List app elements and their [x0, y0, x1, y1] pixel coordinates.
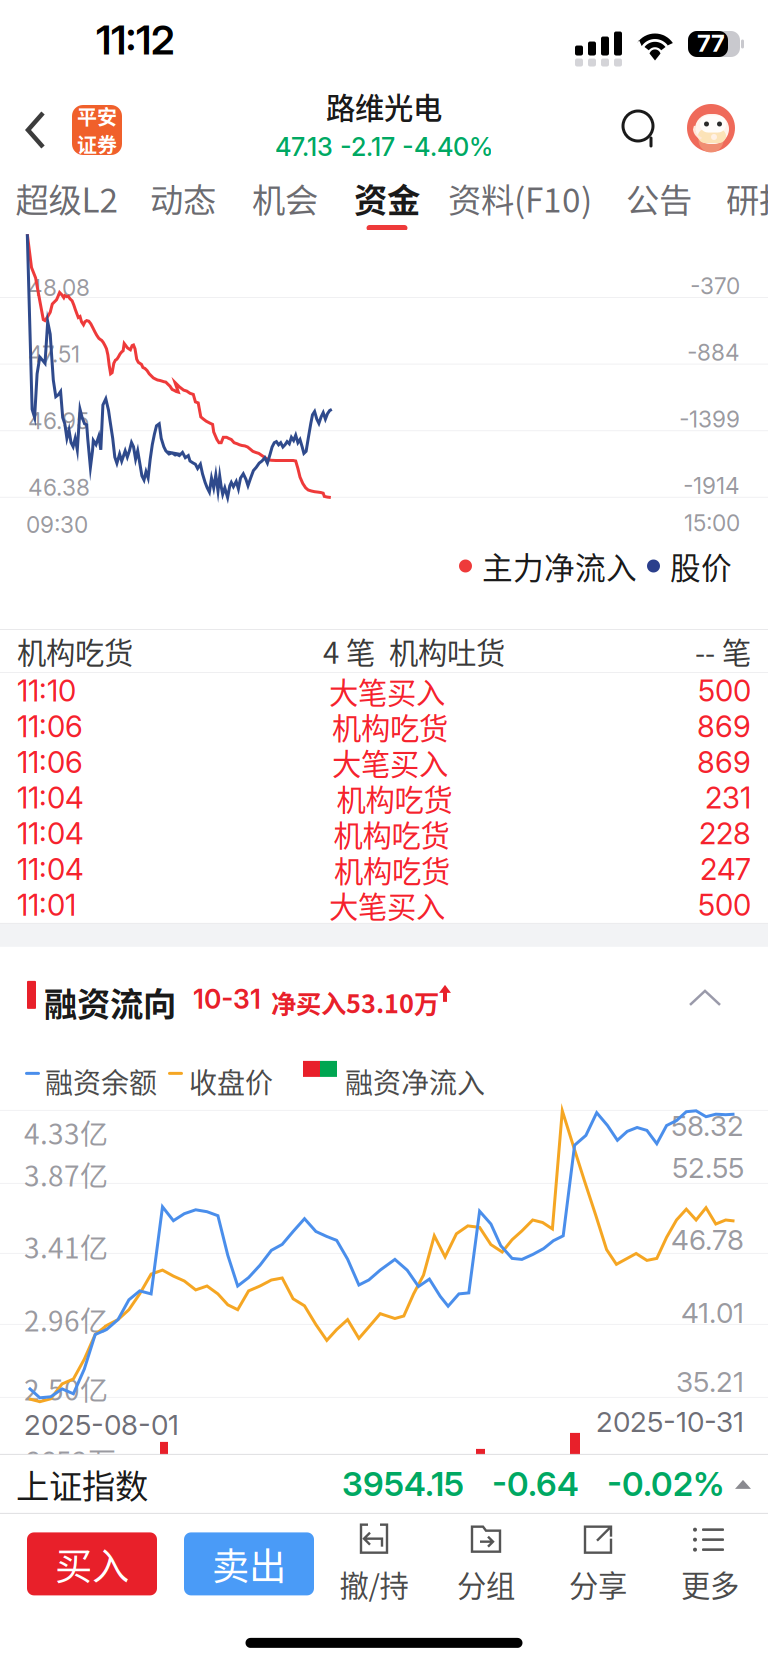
button[interactable]: 11:06	[0, 709, 768, 744]
staticText: 卖出	[212, 1537, 286, 1591]
staticText: 路维光电	[326, 85, 442, 127]
staticText: 3954.15	[342, 1464, 464, 1504]
button[interactable]: 11:04	[0, 816, 768, 851]
staticText: -1914	[683, 472, 740, 499]
staticText: 11:01	[17, 887, 76, 923]
staticText: 47.13 -2.17 -4.40%	[275, 131, 493, 162]
staticText: 资金	[354, 174, 420, 222]
staticText: 买入	[55, 1537, 129, 1591]
staticText: 09:30	[26, 511, 88, 538]
staticText: 大笔买入	[329, 884, 445, 926]
button[interactable]: 11:04	[0, 780, 768, 816]
button[interactable]: Collapse	[680, 981, 730, 1015]
staticText: 融资余额	[45, 1061, 157, 1101]
staticText: 2.50亿	[24, 1368, 108, 1408]
staticText: 股价	[670, 544, 732, 588]
button[interactable]: 资金	[339, 168, 435, 230]
staticText: 证券	[77, 129, 117, 158]
staticText: -884	[687, 339, 740, 366]
staticText: 上证指数	[16, 1460, 148, 1508]
staticText: 869	[697, 709, 751, 744]
button[interactable]: 卖出	[184, 1532, 314, 1595]
staticText: 分组	[457, 1563, 515, 1605]
button[interactable]: 超级L2	[0, 168, 134, 230]
staticText: 35.21	[676, 1365, 744, 1399]
staticText: 500	[698, 887, 751, 923]
staticText: 11:04	[17, 852, 84, 887]
button[interactable]: 11:01	[0, 887, 768, 923]
staticText: 更多	[681, 1563, 739, 1605]
button[interactable]: 公告	[611, 168, 707, 230]
staticText: 46.95	[28, 407, 89, 435]
staticText: 11:10	[17, 673, 76, 709]
staticText: 4.33亿	[24, 1112, 108, 1152]
button[interactable]: 平安证券	[72, 105, 122, 155]
staticText: 平安	[77, 101, 117, 130]
button[interactable]: 11:10	[0, 673, 768, 709]
staticText: 超级L2	[15, 174, 118, 222]
staticText: -- 笔	[695, 630, 751, 672]
staticText: -0.02%	[607, 1464, 724, 1504]
staticText: 机构吃货	[333, 812, 449, 855]
staticText: 6652万	[24, 1440, 116, 1480]
staticText: 247	[700, 852, 751, 887]
staticText: 机会	[252, 174, 318, 222]
staticText: 869	[697, 744, 751, 780]
staticText: 主力净流入	[482, 544, 637, 588]
staticText: 4 笔 机构吐货	[323, 630, 505, 672]
staticText: 机构吃货	[334, 848, 450, 891]
staticText: 231	[705, 780, 751, 816]
staticText: 15:00	[684, 509, 740, 537]
staticText: 研报	[726, 174, 768, 222]
staticText: 500	[698, 673, 751, 709]
staticText: 228	[699, 816, 751, 851]
staticText: 公告	[626, 174, 692, 222]
button[interactable]: 分组	[450, 1524, 522, 1604]
button[interactable]: 机会	[237, 168, 333, 230]
staticText: -0.64	[492, 1464, 579, 1504]
button[interactable]: Back	[17, 103, 55, 157]
staticText: 资料(F10)	[448, 174, 592, 222]
button[interactable]: 11:04	[0, 851, 768, 887]
button[interactable]: 研报	[711, 168, 768, 230]
staticText: 58.32	[671, 1109, 744, 1143]
staticText: 大笔买入	[329, 670, 445, 712]
staticText: -370	[690, 272, 740, 300]
staticText: 融资流向	[44, 978, 176, 1026]
staticText: 净买入53.10万	[271, 984, 439, 1021]
staticText: 11:04	[17, 780, 84, 816]
staticText: 机构吃货	[332, 705, 448, 748]
staticText: 2.96亿	[24, 1299, 108, 1339]
button[interactable]: 上证指数	[0, 1455, 768, 1513]
staticText: 分享	[569, 1563, 627, 1605]
staticText: 融资净流入	[345, 1061, 485, 1101]
staticText: 46.38	[28, 474, 90, 501]
staticText: 10-31	[193, 983, 261, 1015]
staticText: 撤/持	[339, 1563, 408, 1605]
button[interactable]: 撤/持	[338, 1524, 410, 1604]
button[interactable]: 分享	[562, 1524, 634, 1604]
staticText: -1399	[679, 405, 740, 433]
staticText: 动态	[150, 174, 216, 222]
staticText: 11:06	[17, 744, 83, 780]
staticText: 收盘价	[189, 1061, 273, 1101]
staticText: 3.41亿	[24, 1226, 108, 1266]
button[interactable]: Search	[620, 108, 660, 148]
staticText: 47.51	[28, 341, 80, 368]
staticText: 机构吃货	[336, 777, 452, 819]
staticText: 11:12	[96, 16, 175, 64]
staticText: 2025-10-31	[596, 1405, 744, 1439]
button[interactable]: 动态	[135, 168, 231, 230]
button[interactable]: Profile	[683, 100, 739, 156]
staticText: 48.08	[28, 274, 90, 301]
staticText: 77	[697, 28, 725, 57]
staticText: 41.01	[681, 1296, 744, 1330]
button[interactable]: 更多	[674, 1524, 746, 1604]
button[interactable]: 买入	[27, 1532, 157, 1595]
staticText: 大笔买入	[332, 741, 448, 783]
staticText: 3.87亿	[24, 1154, 108, 1194]
staticText: 11:06	[17, 709, 83, 744]
button[interactable]: 资料(F10)	[437, 168, 603, 230]
button[interactable]: 11:06	[0, 744, 768, 780]
staticText: 2025-08-01	[24, 1408, 179, 1442]
